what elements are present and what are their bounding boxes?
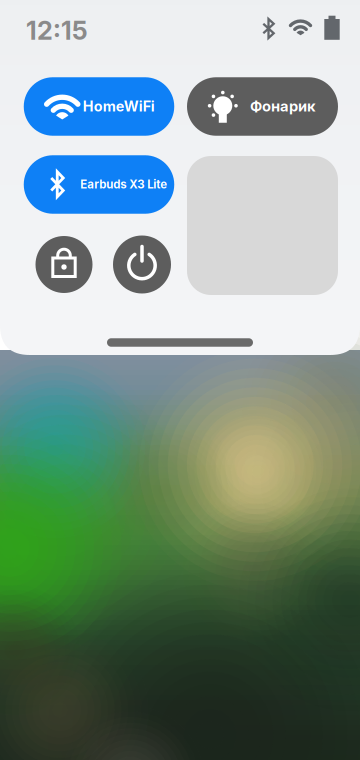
- button[interactable]: Фонарик: [187, 77, 338, 136]
- staticText: Earbuds X3 Lite: [80, 177, 167, 191]
- staticText: HomeWiFi: [83, 97, 155, 115]
- button[interactable]: Power: [113, 235, 171, 293]
- button[interactable]: Lock: [35, 236, 92, 293]
- button[interactable]: Empty tile: [187, 156, 338, 295]
- staticText: 12:15: [26, 15, 88, 46]
- button[interactable]: HomeWiFi: [24, 77, 174, 136]
- button[interactable]: Earbuds X3 Lite: [24, 155, 174, 214]
- staticText: Фонарик: [250, 97, 316, 115]
